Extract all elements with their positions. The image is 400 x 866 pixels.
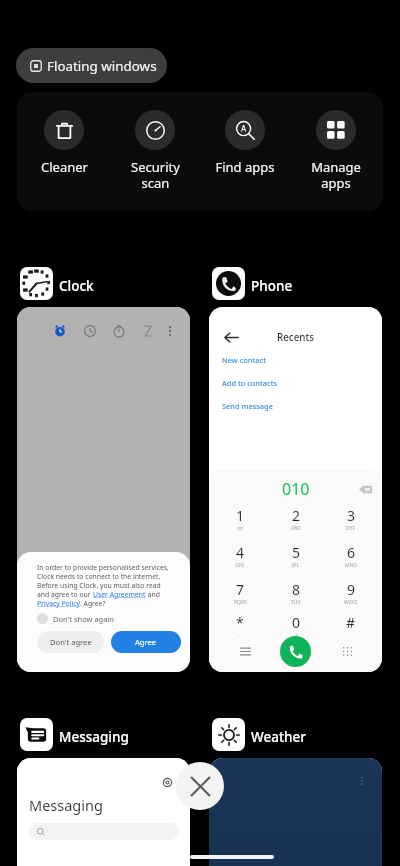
staticText: .: [239, 632, 241, 639]
button[interactable]: Cleaner: [21, 92, 107, 176]
button[interactable]: 1: [216, 502, 264, 539]
staticText: JKL: [292, 562, 300, 569]
staticText: oo: [237, 525, 244, 532]
staticText: Don't agree: [50, 637, 92, 647]
button[interactable]: Close: [176, 762, 224, 810]
button[interactable]: New contact: [222, 355, 267, 365]
staticText: Weather: [251, 728, 306, 746]
button[interactable]: Menu: [234, 640, 256, 662]
staticText: 5: [292, 543, 301, 562]
button[interactable]: Add to contacts: [222, 378, 278, 388]
button[interactable]: 8: [272, 576, 320, 613]
staticText: Before using Clock, you must also read: [37, 581, 161, 590]
button[interactable]: Tab: [17, 307, 190, 672]
staticText: 0: [292, 613, 301, 632]
staticText: Privacy Policy: [37, 599, 80, 608]
button[interactable]: 0: [272, 609, 320, 646]
staticText: 2: [292, 506, 301, 525]
staticText: ABC: [291, 525, 301, 532]
button[interactable]: 9: [327, 576, 375, 613]
button[interactable]: Phone: [209, 267, 293, 300]
staticText: Messaging: [29, 795, 103, 815]
staticText: User Agreement: [93, 590, 146, 599]
button[interactable]: Tab: [159, 320, 181, 342]
staticText: In order to provide personalised service…: [37, 563, 169, 572]
button[interactable]: Tab: [137, 320, 159, 342]
staticText: and agree to our: [37, 590, 93, 599]
button[interactable]: More options: [209, 758, 382, 866]
staticText: MNO: [345, 562, 358, 569]
staticText: . Agree?: [80, 599, 106, 608]
staticText: +: [295, 632, 298, 639]
button[interactable]: Tab: [49, 320, 71, 342]
button[interactable]: Clock: [17, 267, 94, 300]
staticText: DEF: [346, 525, 356, 532]
button[interactable]: Back: [209, 307, 382, 672]
button[interactable]: 2: [272, 502, 320, 539]
staticText: *: [236, 613, 244, 632]
staticText: Recents: [277, 331, 314, 344]
staticText: Agree: [135, 637, 157, 647]
staticText: PQRS: [234, 599, 247, 606]
button[interactable]: Agree: [111, 631, 181, 653]
button[interactable]: [29, 823, 179, 840]
staticText: Messaging: [59, 728, 129, 746]
staticText: GHI: [235, 562, 245, 569]
button[interactable]: 7: [216, 576, 264, 613]
button[interactable]: Floating windows: [16, 48, 167, 83]
staticText: Security scan: [131, 158, 180, 191]
staticText: 1: [236, 506, 245, 525]
staticText: Manage apps: [311, 158, 361, 191]
button[interactable]: Messaging: [17, 758, 190, 866]
button[interactable]: 5: [272, 539, 320, 576]
button[interactable]: Manage apps: [293, 92, 379, 191]
staticText: Floating windows: [47, 57, 157, 75]
button[interactable]: #: [327, 609, 375, 646]
button[interactable]: Send message: [222, 401, 273, 411]
staticText: Clock: [59, 277, 94, 295]
staticText: 7: [236, 580, 245, 599]
staticText: 8: [292, 580, 301, 599]
button[interactable]: Tab: [108, 320, 130, 342]
button[interactable]: Call: [280, 636, 311, 667]
button[interactable]: Account: [158, 773, 176, 791]
button[interactable]: More options: [353, 772, 371, 790]
staticText: 9: [347, 580, 356, 599]
staticText: TUV: [291, 599, 301, 606]
staticText: WXYZ: [344, 599, 358, 606]
staticText: Clock needs to connect to the internet.: [37, 572, 161, 581]
button[interactable]: Tab: [79, 320, 101, 342]
button[interactable]: Back: [221, 327, 241, 347]
button[interactable]: Don't agree: [37, 631, 104, 653]
button[interactable]: Security scan: [112, 92, 198, 191]
staticText: Don't show again: [53, 614, 114, 624]
staticText: 010: [282, 478, 310, 500]
button[interactable]: 3: [327, 502, 375, 539]
staticText: Find apps: [215, 158, 275, 176]
staticText: Phone: [251, 277, 293, 295]
button[interactable]: Don't show again: [37, 613, 114, 624]
button[interactable]: 4: [216, 539, 264, 576]
button[interactable]: Weather: [209, 718, 306, 751]
button[interactable]: 6: [327, 539, 375, 576]
button[interactable]: Messaging: [17, 718, 129, 751]
staticText: 3: [347, 506, 356, 525]
button[interactable]: *: [216, 609, 264, 646]
button[interactable]: Backspace: [356, 480, 374, 498]
staticText: #: [346, 613, 356, 632]
staticText: Cleaner: [41, 158, 88, 176]
staticText: 6: [347, 543, 356, 562]
staticText: 4: [236, 543, 245, 562]
staticText: and: [146, 590, 160, 599]
button[interactable]: Find apps: [202, 92, 288, 176]
button[interactable]: Keypad: [336, 640, 358, 662]
